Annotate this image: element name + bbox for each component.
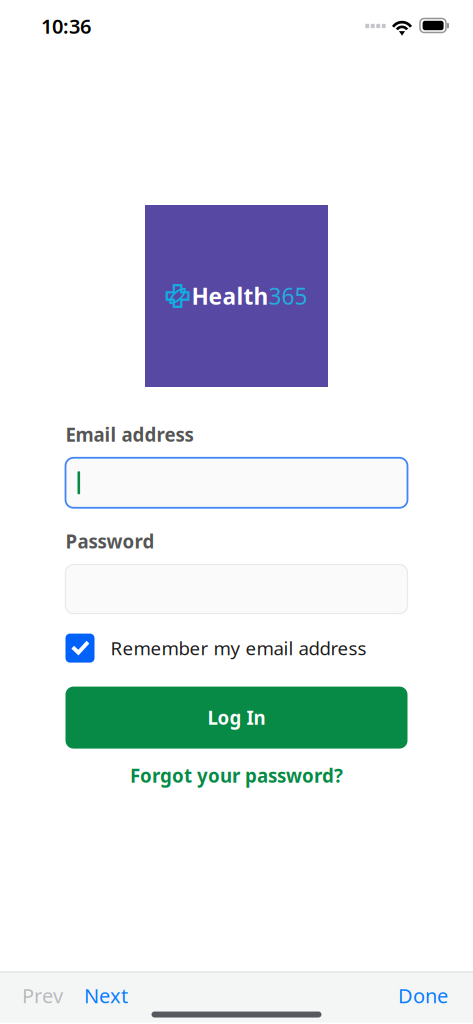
button[interactable]: Forgot your password? [65, 763, 407, 789]
staticText: Next [84, 982, 128, 1009]
button[interactable]: Done [391, 977, 455, 1014]
staticText: Health [191, 281, 268, 311]
staticText: 10:36 [41, 13, 91, 39]
staticText: Email address [65, 422, 193, 447]
staticText: Password [65, 529, 154, 554]
staticText: Forgot your password? [130, 763, 343, 788]
staticText: Prev [22, 982, 63, 1009]
button[interactable]: Next [77, 977, 135, 1014]
button[interactable]: Remember my email address [65, 634, 407, 663]
button[interactable]: Prev [15, 977, 70, 1014]
staticText: Log In [207, 705, 265, 730]
staticText: Remember my email address [110, 636, 366, 660]
button[interactable]: Log In [65, 687, 407, 749]
staticText: Done [398, 982, 448, 1009]
staticText: 365 [268, 281, 307, 311]
